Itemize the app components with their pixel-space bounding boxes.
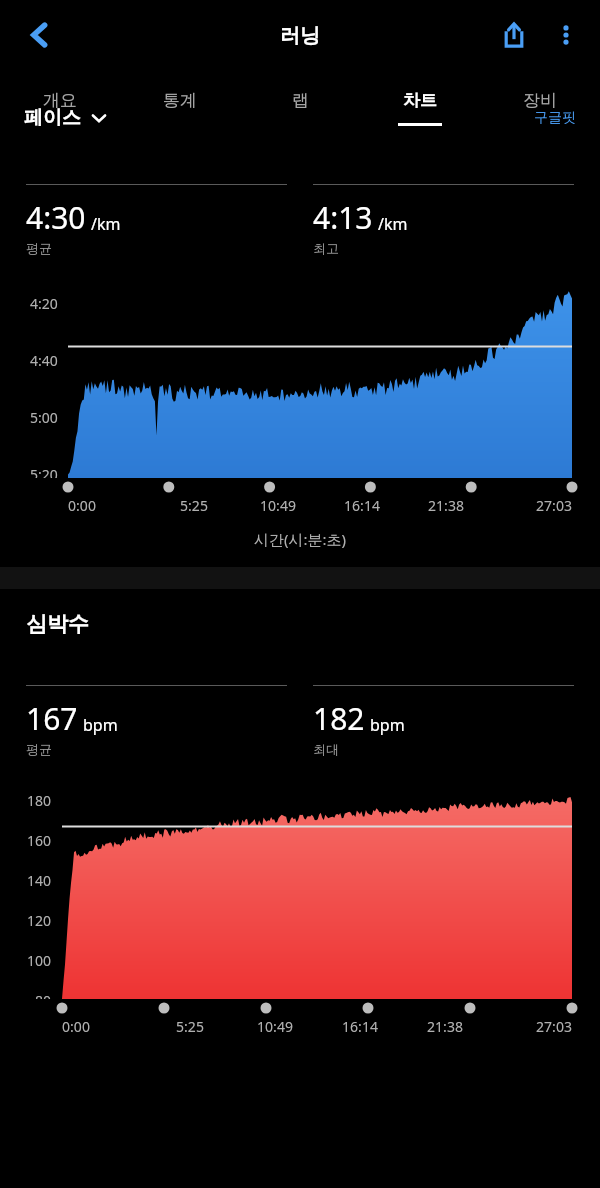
staticText: 최대 xyxy=(313,741,339,757)
button[interactable]: 랩 xyxy=(240,70,360,132)
staticText: 러닝 xyxy=(280,23,320,48)
staticText: bpm xyxy=(370,714,405,736)
staticText: 27:03 xyxy=(536,496,572,515)
staticText: 4:30 xyxy=(26,197,86,238)
staticText: 21:38 xyxy=(427,1017,463,1036)
staticText: /km xyxy=(378,213,408,235)
staticText: 심박수 xyxy=(26,611,89,637)
staticText: /km xyxy=(91,213,121,235)
button[interactable]: 통계 xyxy=(120,70,240,132)
button[interactable]: 개요 xyxy=(0,70,120,132)
staticText: 구글핏 xyxy=(534,109,576,127)
staticText: 5:25 xyxy=(176,1017,204,1036)
staticText: 4:13 xyxy=(313,197,373,238)
staticText: 160 xyxy=(27,831,52,850)
staticText: 100 xyxy=(27,951,52,970)
staticText: 120 xyxy=(27,911,52,930)
staticText: 27:03 xyxy=(536,1017,572,1036)
staticText: bpm xyxy=(83,714,118,736)
staticText: 10:49 xyxy=(257,1017,293,1036)
staticText: 개요 xyxy=(43,90,77,111)
staticText: 최고 xyxy=(313,240,339,256)
staticText: 통계 xyxy=(163,90,197,111)
staticText: 16:14 xyxy=(342,1017,378,1036)
staticText: 10:49 xyxy=(260,496,296,515)
staticText: 평균 xyxy=(26,240,52,256)
button[interactable]: 페이스 xyxy=(24,106,107,130)
staticText: 167 xyxy=(26,698,78,739)
staticText: 5:00 xyxy=(30,408,58,427)
staticText: 5:25 xyxy=(180,496,208,515)
staticText: 0:00 xyxy=(68,496,96,515)
staticText: 차트 xyxy=(403,90,437,111)
staticText: 4:20 xyxy=(30,294,58,313)
staticText: 평균 xyxy=(26,741,52,757)
staticText: 시간(시:분:초) xyxy=(254,529,347,549)
button[interactable]: 차트 xyxy=(360,70,480,132)
staticText: 랩 xyxy=(292,90,309,111)
staticText: 0:00 xyxy=(62,1017,90,1036)
staticText: 80 xyxy=(35,991,52,999)
button[interactable]: Back xyxy=(14,9,66,61)
button[interactable]: 장비 xyxy=(480,70,600,132)
staticText: 21:38 xyxy=(428,496,464,515)
button[interactable]: Share xyxy=(488,9,540,61)
staticText: 페이스 xyxy=(24,106,81,130)
button[interactable]: More options xyxy=(540,9,592,61)
staticText: 180 xyxy=(27,791,52,810)
staticText: 장비 xyxy=(523,90,557,111)
staticText: 5:20 xyxy=(30,465,58,478)
staticText: 182 xyxy=(313,698,365,739)
staticText: 140 xyxy=(27,871,52,890)
button[interactable]: 구글핏 xyxy=(534,109,576,127)
staticText: 4:40 xyxy=(30,351,58,370)
staticText: 16:14 xyxy=(344,496,380,515)
